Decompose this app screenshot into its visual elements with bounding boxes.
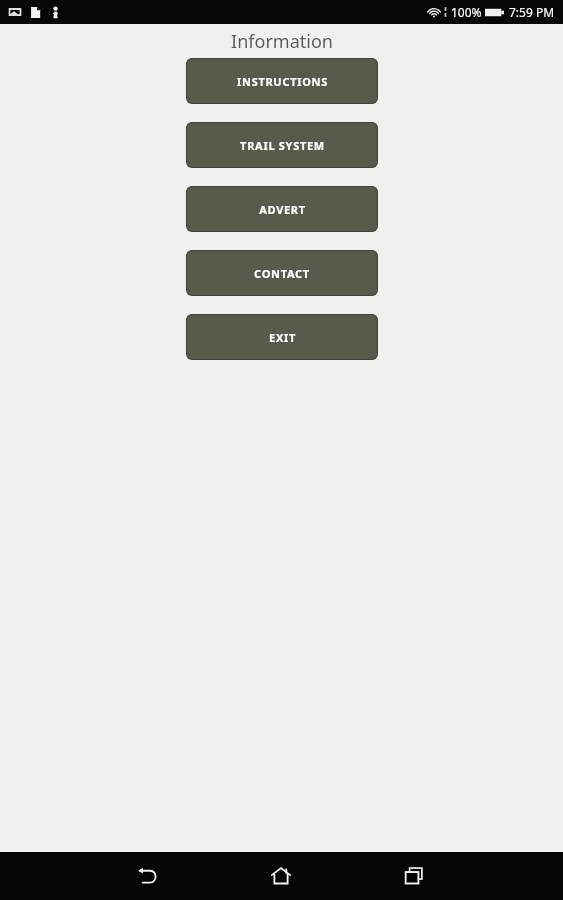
- button[interactable]: INSTRUCTIONS: [187, 59, 377, 103]
- staticText: EXIT: [269, 330, 296, 345]
- staticText: Information: [231, 29, 333, 54]
- staticText: CONTACT: [254, 266, 310, 281]
- staticText: 7:59 PM: [509, 4, 555, 20]
- button[interactable]: CONTACT: [187, 251, 377, 295]
- staticText: TRAIL SYSTEM: [240, 138, 325, 153]
- staticText: ADVERT: [259, 202, 306, 217]
- button[interactable]: EXIT: [187, 315, 377, 359]
- button[interactable]: Home: [257, 852, 305, 900]
- button[interactable]: Back: [124, 852, 172, 900]
- staticText: INSTRUCTIONS: [237, 74, 328, 89]
- staticText: 100%: [451, 4, 482, 20]
- button[interactable]: Recent apps: [390, 852, 438, 900]
- button[interactable]: TRAIL SYSTEM: [187, 123, 377, 167]
- button[interactable]: ADVERT: [187, 187, 377, 231]
